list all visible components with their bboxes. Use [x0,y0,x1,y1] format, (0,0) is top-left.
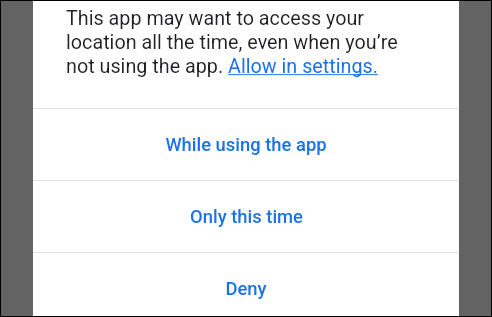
button[interactable]: Deny [33,253,459,317]
staticText: This app may want to access your locatio… [66,7,411,78]
staticText: While using the app [165,134,327,156]
button[interactable]: Only this time [33,181,459,252]
button[interactable]: Allow in settings. [228,55,379,79]
staticText: Deny [225,278,267,300]
staticText: Only this time [190,206,303,228]
button[interactable]: While using the app [33,109,459,180]
